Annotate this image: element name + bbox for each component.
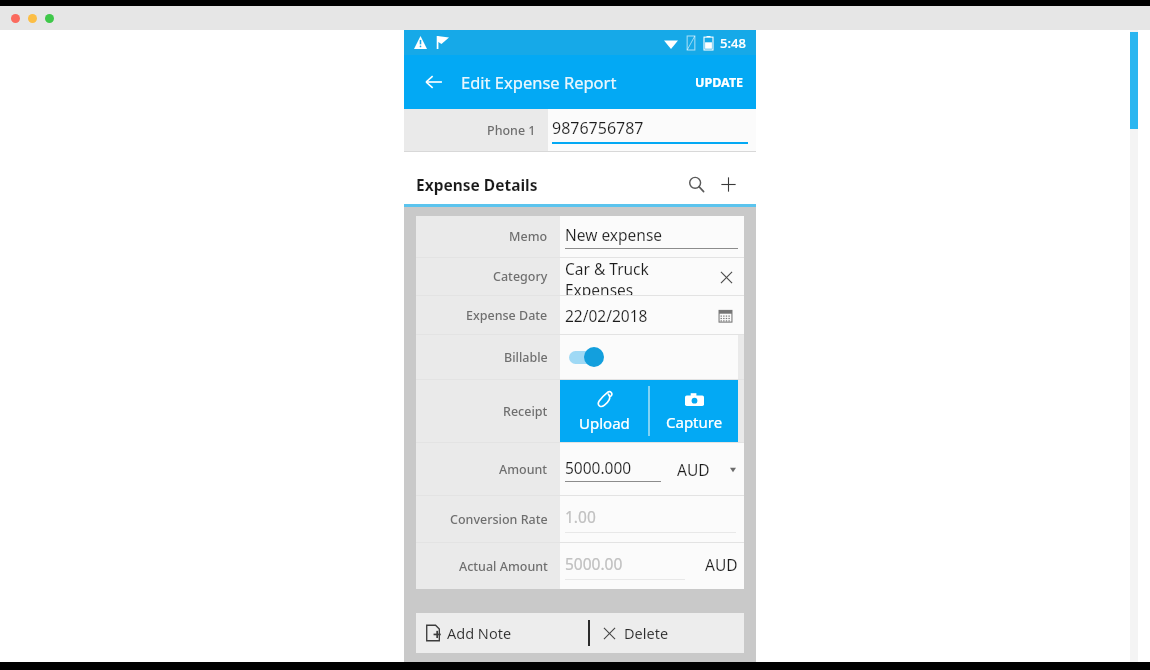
button[interactable]: UPDATE xyxy=(683,60,756,105)
staticText: AUD xyxy=(705,554,738,575)
staticText: 22/02/2018 xyxy=(565,305,714,326)
staticText: 9876756787 xyxy=(552,117,644,139)
staticText: 5000.00 xyxy=(565,553,623,574)
staticText: 5:48 xyxy=(720,34,746,52)
staticText: AUD xyxy=(677,459,710,480)
staticText: Conversion Rate xyxy=(450,511,548,528)
staticText: Phone 1 xyxy=(487,122,536,139)
button[interactable]: Delete xyxy=(590,613,744,653)
staticText: Category xyxy=(493,268,548,285)
button[interactable]: Back xyxy=(412,60,456,104)
staticText: Car & Truck Expenses xyxy=(565,258,714,295)
staticText: 5000.000 xyxy=(565,457,632,478)
staticText: Actual Amount xyxy=(459,558,548,575)
staticText: Expense Details xyxy=(416,174,680,195)
staticText: New expense xyxy=(565,224,663,245)
staticText: Billable xyxy=(504,349,548,366)
button[interactable]: Capture xyxy=(650,380,738,442)
staticText: Capture xyxy=(666,412,723,432)
button[interactable]: Pick date xyxy=(714,304,736,326)
staticText: Memo xyxy=(509,228,548,245)
button[interactable]: Add expense xyxy=(712,168,744,200)
staticText: Upload xyxy=(579,413,630,433)
button[interactable]: Upload xyxy=(560,380,648,442)
button[interactable]: Clear category xyxy=(714,265,738,289)
staticText: Receipt xyxy=(503,403,548,420)
button[interactable]: Search xyxy=(680,168,712,200)
staticText: 1.00 xyxy=(565,506,596,527)
staticText: Edit Expense Report xyxy=(461,71,617,93)
staticText: Add Note xyxy=(447,623,512,643)
staticText: Amount xyxy=(499,461,548,478)
staticText: Delete xyxy=(624,623,669,643)
staticText: Expense Date xyxy=(466,307,548,324)
button[interactable]: Add Note xyxy=(416,613,588,653)
button[interactable]: AUD xyxy=(677,453,736,486)
button[interactable]: Billable toggle xyxy=(566,345,612,369)
staticText: UPDATE xyxy=(695,74,744,91)
